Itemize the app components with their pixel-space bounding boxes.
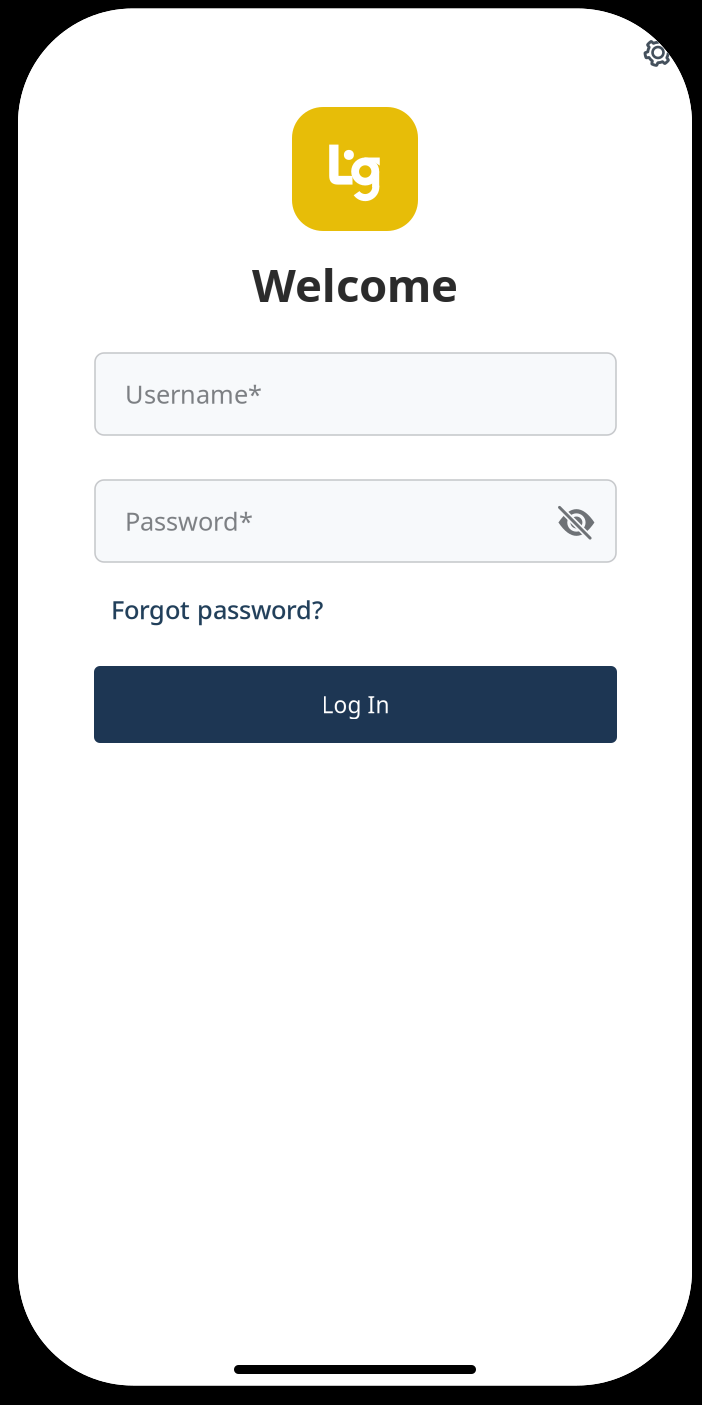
staticText: Welcome bbox=[252, 254, 458, 315]
button[interactable]: Username* bbox=[95, 353, 616, 435]
button[interactable]: Password* bbox=[95, 480, 616, 562]
staticText: Log In bbox=[321, 689, 389, 719]
button[interactable]: Forgot password? bbox=[111, 592, 323, 626]
staticText: Password* bbox=[125, 504, 253, 538]
button[interactable]: Settings bbox=[636, 30, 680, 74]
button[interactable]: Log In bbox=[94, 666, 617, 743]
staticText: Username* bbox=[125, 377, 262, 411]
staticText: Forgot password? bbox=[111, 593, 323, 626]
